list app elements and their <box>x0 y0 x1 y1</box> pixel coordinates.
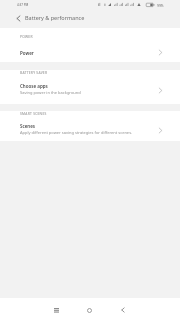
staticText: Power <box>20 50 34 56</box>
button[interactable]: Power <box>0 49 180 62</box>
staticText: 4:37 PM <box>17 3 29 7</box>
button[interactable]: Scenes <box>0 122 180 141</box>
button[interactable]: Choose apps <box>0 82 180 104</box>
staticText: POWER <box>20 34 33 38</box>
staticText: BATTERY SAVER <box>20 70 48 74</box>
staticText: Saving power in the background <box>20 90 165 95</box>
button[interactable]: Navigate up <box>11 11 26 26</box>
button[interactable]: Recent apps <box>46 300 66 320</box>
staticText: Scenes <box>20 123 36 129</box>
staticText: Battery & performance <box>25 14 85 21</box>
staticText: 99% <box>157 3 164 7</box>
button[interactable]: Back <box>113 300 133 320</box>
staticText: SMART SCENES <box>20 111 47 115</box>
button[interactable]: Home <box>79 300 99 320</box>
staticText: Apply different power saving strategies … <box>20 130 165 135</box>
staticText: Choose apps <box>20 83 48 89</box>
